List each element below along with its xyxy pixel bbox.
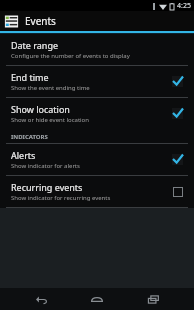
- button[interactable]: Recurring events: [0, 176, 194, 207]
- button[interactable]: Recurring events checkbox, unchecked: [169, 183, 186, 200]
- button[interactable]: Home: [80, 288, 114, 310]
- button[interactable]: End time: [0, 66, 194, 97]
- staticText: Show or hide event location: [11, 116, 89, 124]
- staticText: Show location: [11, 103, 70, 115]
- button[interactable]: Show location: [0, 98, 194, 129]
- staticText: Show the event ending time: [11, 84, 90, 92]
- staticText: End time: [11, 71, 49, 83]
- staticText: Recurring events: [11, 181, 83, 193]
- staticText: 4:25: [177, 1, 191, 11]
- button[interactable]: Events: [0, 11, 194, 31]
- button[interactable]: Alerts: [0, 144, 194, 175]
- staticText: Events: [25, 14, 56, 28]
- button[interactable]: End time checkbox, checked: [169, 73, 186, 90]
- button[interactable]: Show location checkbox, checked: [169, 105, 186, 122]
- staticText: INDICATORS: [11, 133, 48, 141]
- staticText: Show indicator for recurring events: [11, 194, 111, 202]
- staticText: Date range: [11, 39, 59, 51]
- staticText: Alerts: [11, 149, 36, 161]
- staticText: Configure the number of events to displa…: [11, 52, 130, 60]
- button[interactable]: Recent apps: [136, 288, 170, 310]
- button[interactable]: Date range: [0, 34, 194, 65]
- button[interactable]: Back: [24, 288, 58, 310]
- staticText: Show indicator for alerts: [11, 162, 80, 170]
- button[interactable]: Alerts checkbox, checked: [169, 151, 186, 168]
